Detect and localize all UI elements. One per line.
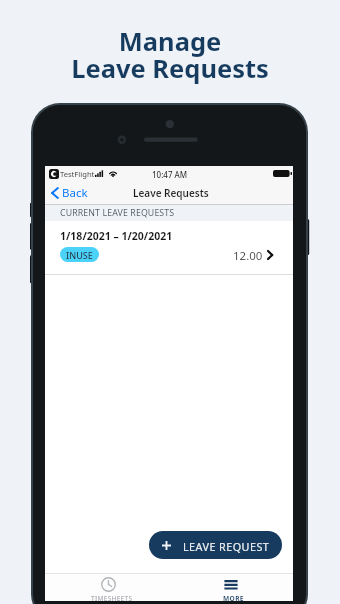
staticText: MORE	[223, 594, 244, 603]
button[interactable]: LEAVE REQUEST	[149, 531, 282, 559]
button[interactable]: 1/18/2021 – 1/20/2021	[45, 221, 293, 274]
staticText: 1/18/2021 – 1/20/2021	[60, 229, 173, 243]
staticText: TestFlight	[60, 169, 95, 179]
button[interactable]: Back	[45, 185, 92, 201]
staticText: Manage Leave Requests	[0, 24, 340, 86]
staticText: Leave Requests	[133, 186, 209, 200]
staticText: TIMESHEETS	[91, 594, 133, 603]
staticText: LEAVE REQUEST	[183, 539, 270, 554]
button[interactable]: MORE	[169, 574, 293, 601]
staticText: 12.00	[233, 248, 263, 264]
staticText: 10:47 AM	[152, 169, 188, 180]
staticText: INUSE	[66, 249, 93, 261]
staticText: Back	[62, 185, 88, 201]
button[interactable]: TIMESHEETS	[45, 574, 169, 601]
staticText: CURRENT LEAVE REQUESTS	[60, 207, 175, 219]
